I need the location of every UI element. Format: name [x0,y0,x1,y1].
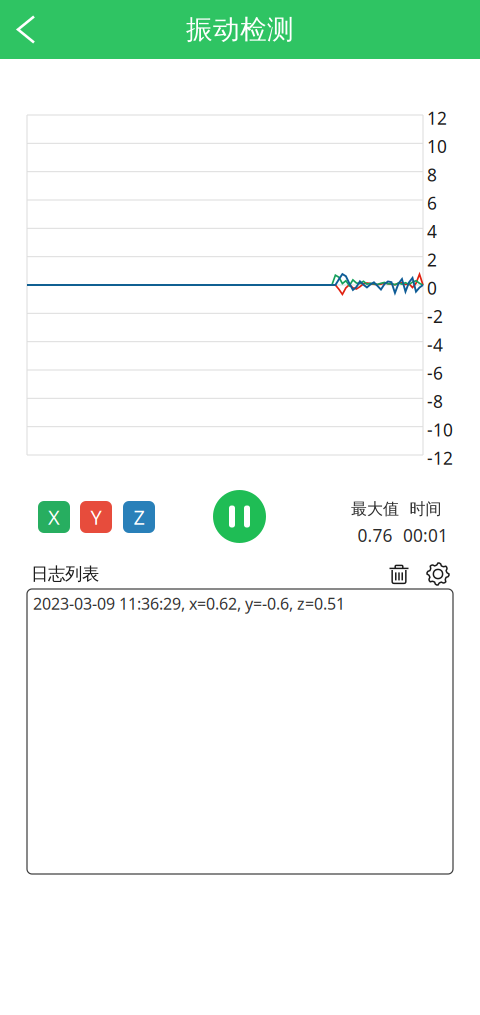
staticText: 8 [427,163,437,186]
button[interactable]: X [38,501,70,533]
staticText: 时间 [409,499,441,519]
button[interactable]: Back [0,3,48,55]
staticText: -10 [427,418,453,441]
staticText: 最大值 [351,499,399,519]
staticText: 2023-03-09 11:36:29, x=0.62, y=-0.6, z=0… [33,593,345,614]
staticText: -4 [427,333,443,356]
staticText: -2 [427,305,443,328]
staticText: 00:01 [403,524,448,547]
staticText: 0.76 [357,524,392,547]
button[interactable]: Delete logs [384,559,414,589]
staticText: 4 [427,220,437,243]
staticText: Z [133,504,144,530]
staticText: 日志列表 [31,563,99,585]
staticText: 0 [427,276,437,299]
button[interactable]: Pause [213,490,266,543]
button[interactable]: Z [123,501,155,533]
staticText: -12 [427,446,453,469]
staticText: 6 [427,191,437,214]
staticText: 2 [427,248,437,271]
staticText: -6 [427,361,443,384]
staticText: Y [90,504,101,530]
staticText: 振动检测 [186,13,294,46]
button[interactable]: Settings [423,559,453,589]
staticText: -8 [427,390,443,413]
staticText: X [48,504,60,530]
staticText: 10 [427,135,447,158]
staticText: 12 [427,106,447,129]
button[interactable]: Y [80,501,112,533]
